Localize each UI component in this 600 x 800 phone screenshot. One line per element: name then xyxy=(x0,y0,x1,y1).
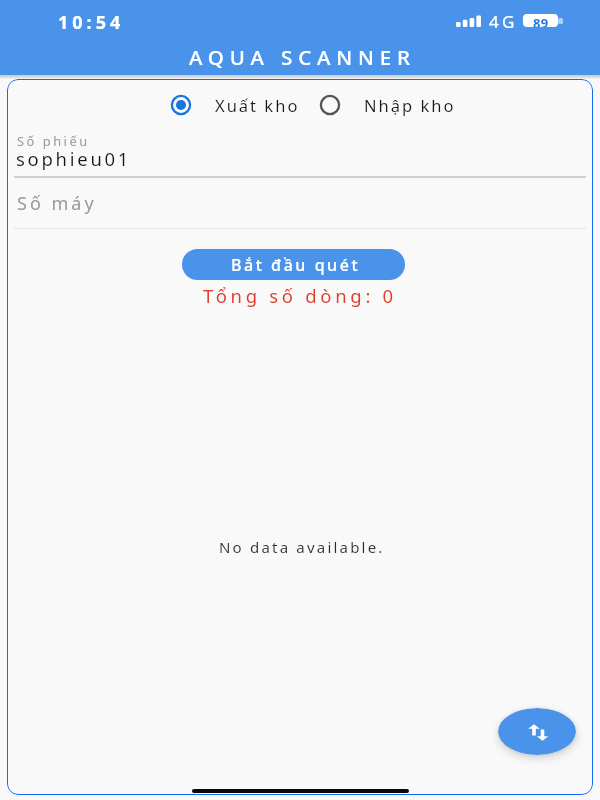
staticText: Số phiếu xyxy=(17,132,90,149)
staticText: sophieu01 xyxy=(16,146,132,171)
button[interactable]: Nhập kho xyxy=(318,93,456,117)
staticText: 89 xyxy=(533,14,549,27)
button[interactable]: Transfer xyxy=(498,708,576,755)
staticText: No data available. xyxy=(219,537,385,557)
staticText: AQUA SCANNER xyxy=(189,43,416,71)
button[interactable]: Xuất kho xyxy=(169,93,300,117)
staticText: 4G xyxy=(489,10,518,33)
staticText: 10:54 xyxy=(58,10,125,35)
staticText: Nhập kho xyxy=(364,94,456,116)
staticText: Số máy xyxy=(17,191,97,216)
button[interactable]: Bắt đầu quét xyxy=(182,249,405,280)
staticText: Tổng số dòng: 0 xyxy=(203,283,397,308)
staticText: Bắt đầu quét xyxy=(231,254,361,276)
staticText: Xuất kho xyxy=(215,94,300,116)
